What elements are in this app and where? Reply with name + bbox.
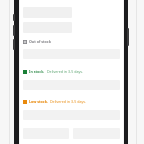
staticText: Out of stock xyxy=(29,39,51,44)
button[interactable]: Out of stock xyxy=(23,38,120,45)
other: Volume down xyxy=(13,39,15,50)
staticText: Low stock. xyxy=(29,99,48,104)
other: Silent switch xyxy=(13,14,15,21)
button[interactable]: In stock. xyxy=(23,68,120,75)
other: Volume up xyxy=(13,25,15,36)
button[interactable]: Low stock. xyxy=(23,98,120,105)
staticText: In stock. xyxy=(29,69,45,74)
staticText: Delivered in 3-5 days. xyxy=(47,69,83,74)
other: Power xyxy=(127,28,129,46)
staticText: Delivered in 3-5 days. xyxy=(50,99,86,104)
